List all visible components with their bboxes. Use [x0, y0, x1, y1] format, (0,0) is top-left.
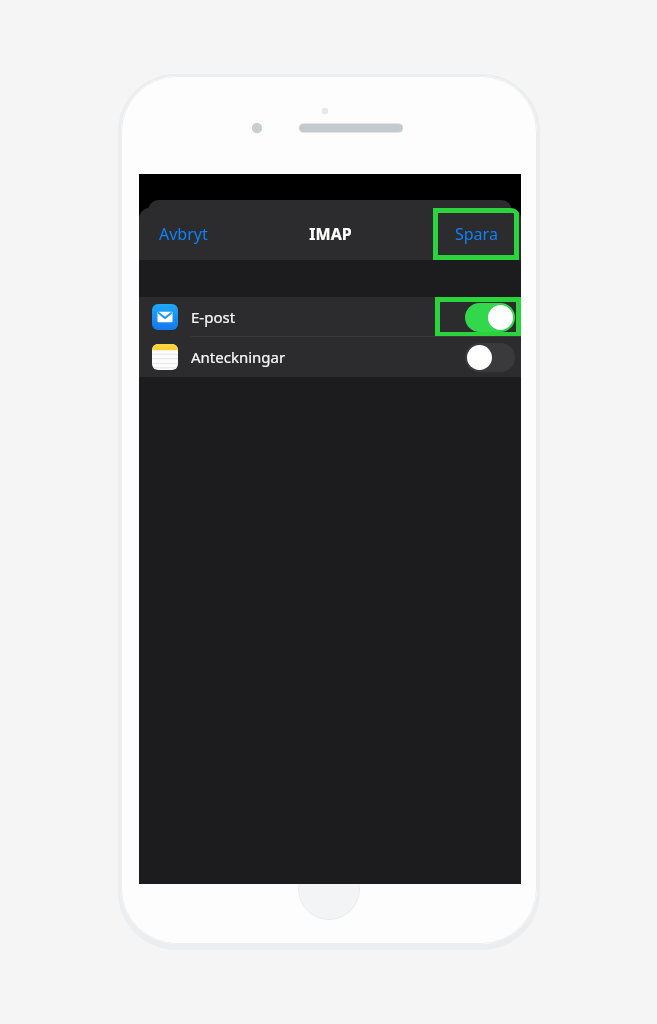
- button[interactable]: Home: [298, 858, 360, 920]
- button[interactable]: E-post: [139, 297, 521, 337]
- staticText: Anteckningar: [191, 347, 286, 367]
- button[interactable]: Off: [465, 343, 515, 372]
- staticText: Avbryt: [159, 223, 208, 245]
- button[interactable]: Anteckningar: [139, 337, 521, 377]
- staticText: IMAP: [309, 223, 352, 245]
- button[interactable]: Spara: [433, 208, 519, 260]
- staticText: E-post: [191, 307, 236, 327]
- button[interactable]: Avbryt: [147, 215, 220, 253]
- staticText: Spara: [455, 223, 498, 245]
- button[interactable]: On: [465, 303, 515, 332]
